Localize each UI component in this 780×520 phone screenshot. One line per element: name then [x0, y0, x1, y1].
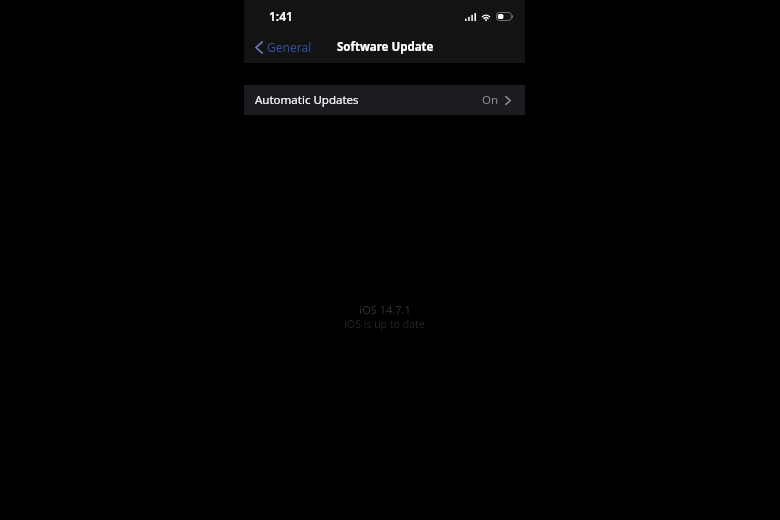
button[interactable]: General	[244, 34, 320, 60]
other: Battery level	[496, 12, 514, 21]
staticText: Automatic Updates	[255, 92, 359, 108]
button[interactable]: Automatic Updates	[244, 85, 525, 115]
staticText: On	[482, 92, 499, 108]
staticText: Software Update	[337, 39, 434, 55]
other: Cellular signal strength	[465, 13, 476, 21]
staticText: iOS 14.7.1	[359, 302, 411, 317]
staticText: 1:41	[269, 8, 293, 24]
staticText: General	[267, 39, 312, 55]
staticText: iOS is up to date	[344, 317, 425, 331]
other: Wi-Fi connected	[480, 12, 492, 21]
